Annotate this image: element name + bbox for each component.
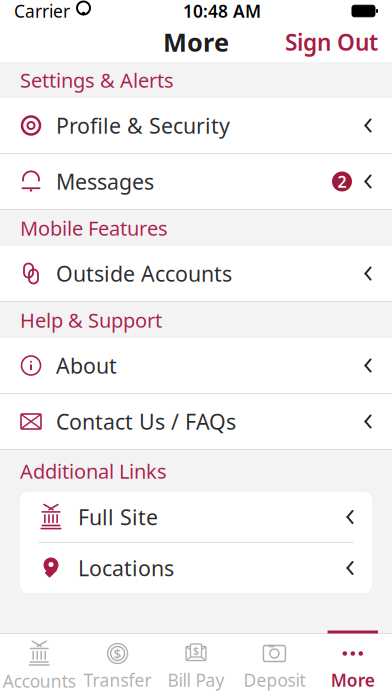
staticText: Transfer [84, 668, 152, 691]
staticText: About [56, 351, 117, 380]
staticText: More [331, 668, 375, 691]
staticText: Settings & Alerts [20, 67, 174, 93]
staticText: Full Site [78, 503, 158, 531]
staticText: Messages [56, 167, 154, 196]
button[interactable]: Deposit [235, 634, 314, 696]
staticText: Outside Accounts [56, 259, 232, 288]
staticText: Carrier [14, 0, 70, 22]
button[interactable]: Profile & Security [0, 98, 392, 154]
button[interactable]: Contact Us / FAQs [0, 394, 392, 450]
staticText: Mobile Features [20, 215, 168, 241]
button[interactable]: $ [78, 634, 157, 696]
button[interactable]: About [0, 338, 392, 394]
staticText: Help & Support [20, 307, 162, 333]
staticText: More [163, 25, 229, 59]
staticText: Accounts [3, 669, 76, 692]
staticText: Locations [78, 554, 174, 582]
button[interactable]: Messages [0, 154, 392, 210]
staticText: $ [193, 643, 199, 658]
button[interactable]: Locations [20, 543, 372, 593]
button[interactable]: More [314, 634, 392, 696]
staticText: Bill Pay [167, 668, 224, 691]
staticText: 10:48 AM [183, 0, 261, 22]
button[interactable]: Outside Accounts [0, 246, 392, 302]
staticText: Contact Us / FAQs [56, 407, 236, 436]
staticText: Deposit [243, 668, 305, 691]
button[interactable]: Sign Out [271, 19, 392, 65]
staticText: Profile & Security [56, 111, 230, 140]
staticText: $ [114, 645, 122, 662]
staticText: 2 [337, 171, 346, 192]
staticText: Additional Links [20, 458, 167, 484]
button[interactable]: $ [157, 634, 235, 696]
staticText: Sign Out [285, 27, 378, 57]
button[interactable]: Accounts [0, 634, 78, 696]
button[interactable]: Full Site [20, 492, 372, 542]
